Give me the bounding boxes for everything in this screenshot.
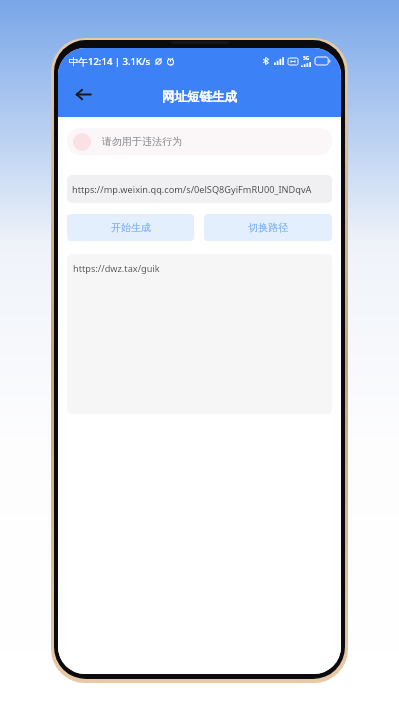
staticText: 切换路径 [248,221,288,234]
button[interactable]: 开始生成 [67,214,194,241]
staticText: https://mp.weixin.qq.com/s/0elSQ8GyiFmRU… [72,183,312,196]
staticText: 5G [303,55,310,62]
staticText: 中午12:14 | 3.1K/s [69,55,151,68]
staticText: 请勿用于违法行为 [102,135,182,148]
staticText: https://dwz.tax/guik [73,262,160,275]
button[interactable]: 切换路径 [204,214,332,241]
button[interactable]: 请勿用于违法行为 [67,128,332,155]
staticText: 开始生成 [111,221,151,234]
staticText: 网址短链生成 [162,89,237,105]
button[interactable]: Back [66,77,100,111]
button[interactable]: https://dwz.tax/guik [67,254,332,414]
button[interactable]: https://mp.weixin.qq.com/s/0elSQ8GyiFmRU… [67,175,332,203]
